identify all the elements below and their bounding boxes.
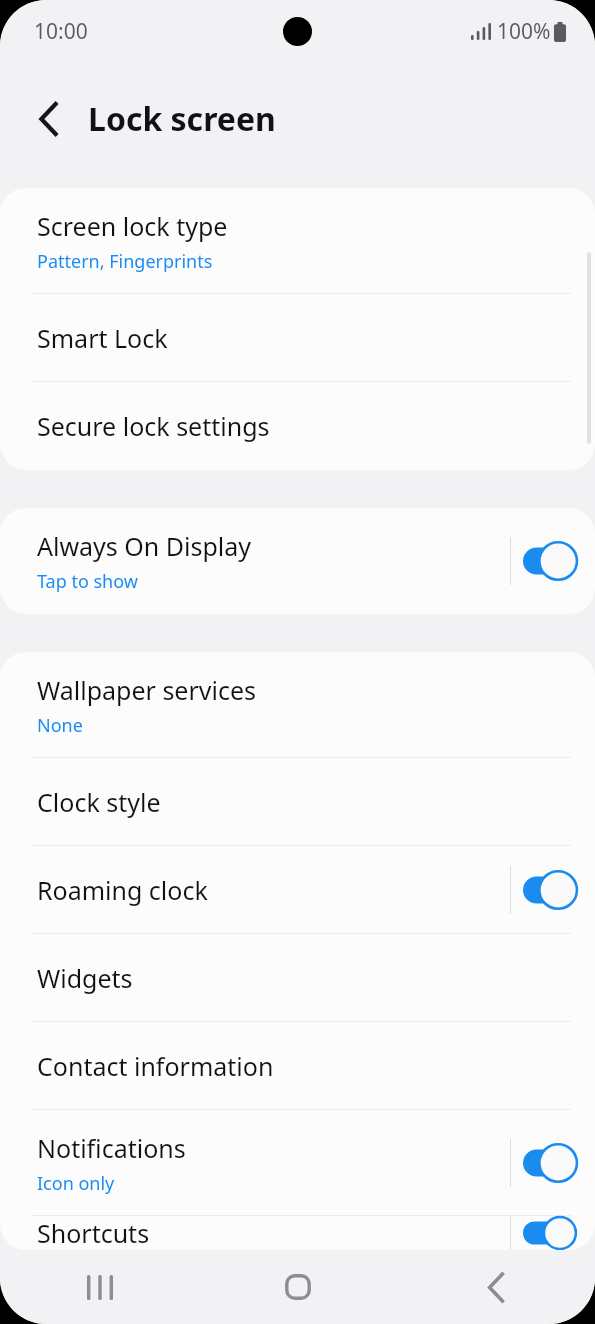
staticText: Notifications (37, 1131, 186, 1165)
button[interactable]: Back (397, 1250, 595, 1324)
staticText: Icon only (37, 1171, 115, 1196)
staticText: Wallpaper services (37, 673, 257, 707)
button[interactable]: Clock style (0, 758, 595, 846)
staticText: Clock style (37, 785, 161, 819)
button[interactable]: Always On Display switch (511, 508, 595, 614)
button[interactable]: Roaming clock (0, 846, 595, 934)
button[interactable]: Widgets (0, 934, 595, 1022)
button[interactable]: Always On Display (0, 508, 595, 614)
button[interactable]: Contact information (0, 1022, 595, 1110)
staticText: Roaming clock (37, 873, 208, 907)
staticText: 10:00 (34, 17, 88, 46)
staticText: 100% (497, 17, 551, 46)
staticText: Smart Lock (37, 321, 168, 355)
button[interactable]: Notifications switch (511, 1110, 595, 1216)
button[interactable]: Roaming clock switch (511, 846, 595, 934)
button[interactable]: Shortcuts switch (511, 1216, 595, 1250)
staticText: Lock screen (88, 97, 276, 141)
button[interactable]: Screen lock type (0, 188, 595, 294)
button[interactable]: Shortcuts (0, 1216, 595, 1250)
staticText: Shortcuts (37, 1216, 150, 1250)
staticText: Always On Display (37, 529, 252, 563)
staticText: Contact information (37, 1049, 274, 1083)
button[interactable]: Smart Lock (0, 294, 595, 382)
staticText: Tap to show (37, 569, 138, 594)
button[interactable]: Navigate up (22, 93, 74, 145)
staticText: Pattern, Fingerprints (37, 249, 213, 274)
staticText: None (37, 713, 83, 738)
button[interactable]: Home (199, 1250, 397, 1324)
staticText: Secure lock settings (37, 409, 270, 443)
button[interactable]: Notifications (0, 1110, 595, 1216)
button[interactable]: Recent apps (0, 1250, 199, 1324)
button[interactable]: Secure lock settings (0, 382, 595, 470)
staticText: Widgets (37, 961, 133, 995)
staticText: Screen lock type (37, 209, 228, 243)
button[interactable]: Wallpaper services (0, 652, 595, 758)
